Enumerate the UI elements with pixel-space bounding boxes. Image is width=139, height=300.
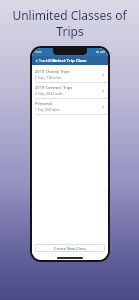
staticText: Select Trip Class (53, 58, 87, 64)
staticText: 2 Trips, 7.00 miles (35, 76, 61, 80)
button[interactable]: 2019 Contract Trips (32, 83, 108, 98)
staticText: 1 Trip, 0.54 miles (35, 108, 60, 112)
other: Back (35, 59, 39, 63)
staticText: Trips (56, 23, 84, 39)
staticText: 2019 Contract Trips (35, 85, 73, 91)
button[interactable]: Personal (32, 99, 108, 114)
button[interactable]: Back (34, 56, 58, 65)
staticText: 4 Trips, 24.22 miles (35, 92, 63, 96)
staticText: Create New Class (54, 246, 86, 251)
staticText: Personal (35, 101, 52, 107)
staticText: 2019 Charity Trips (35, 69, 70, 75)
button[interactable]: 2019 Charity Trips (32, 67, 108, 82)
staticText: TrackMiles (39, 58, 57, 63)
button[interactable]: Create New Class (35, 244, 105, 252)
staticText: Unlimited Classes of (12, 7, 127, 23)
